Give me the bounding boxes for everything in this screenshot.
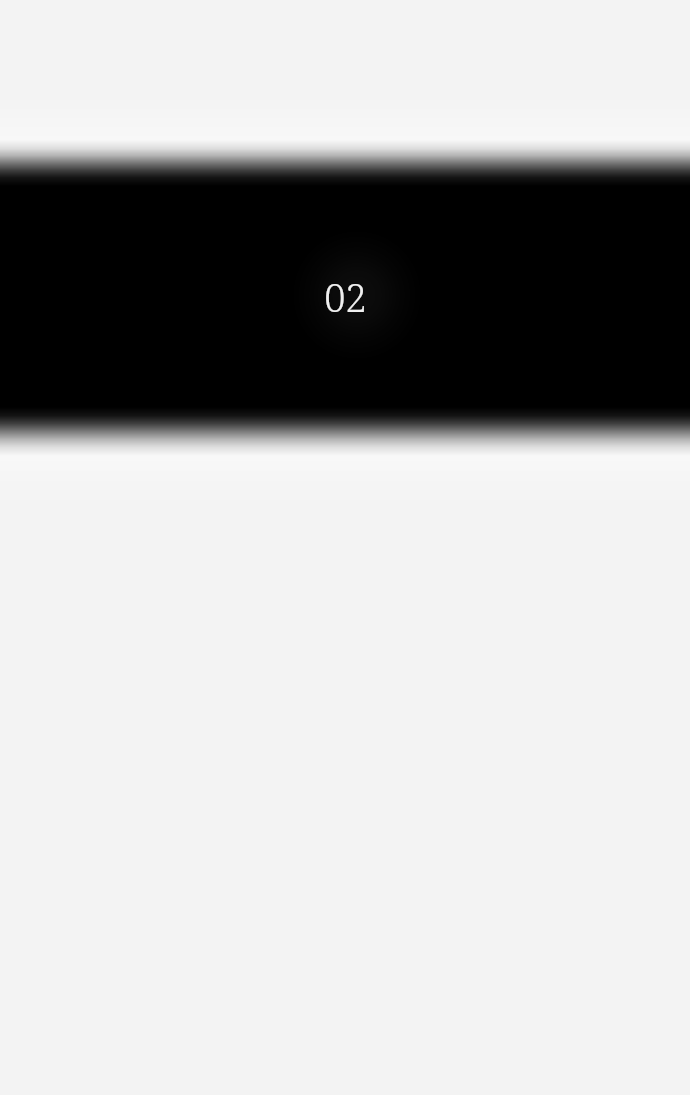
staticText: 02 <box>324 271 367 323</box>
button[interactable]: Value 02 <box>0 186 690 407</box>
